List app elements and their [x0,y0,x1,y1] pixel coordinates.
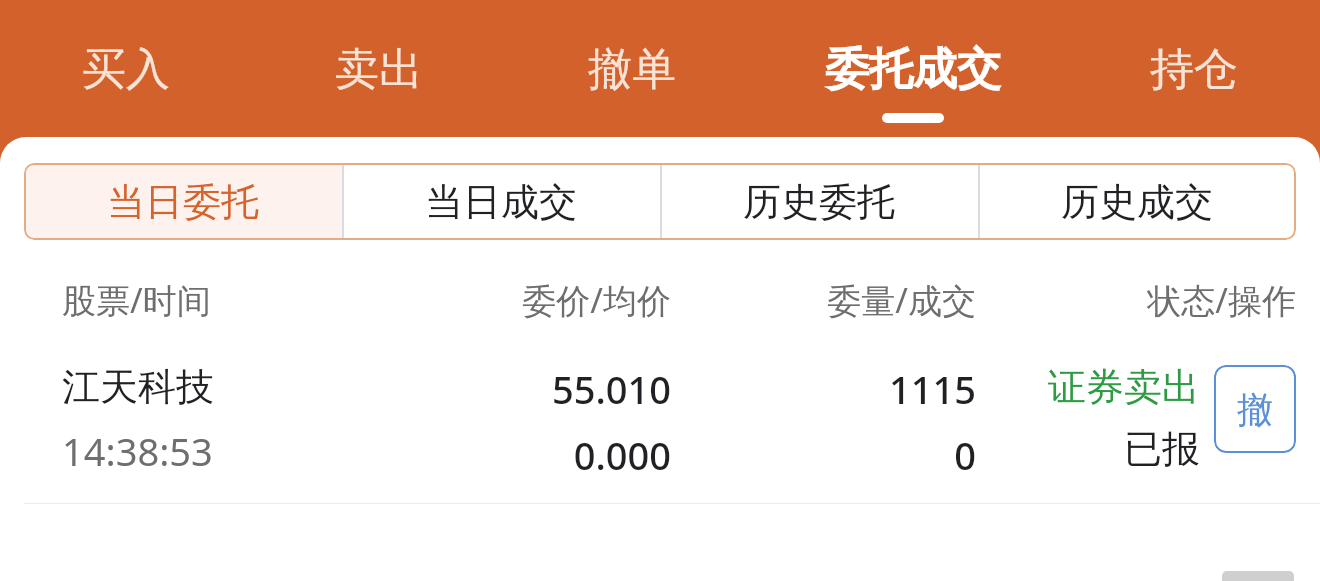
staticText: 委量/成交 [671,277,976,323]
staticText: 持仓 [1150,42,1238,97]
staticText: 卖出 [335,42,423,97]
staticText: 证券卖出 [1048,363,1200,411]
staticText: 撤单 [588,42,676,97]
staticText: 委价/均价 [366,277,671,323]
staticText: 0.000 [366,429,671,481]
staticText: 55.010 [366,363,671,415]
button[interactable]: 历史委托 [660,163,978,240]
button[interactable]: 撤单 [1214,365,1296,453]
button[interactable]: 卖出 [252,0,505,137]
staticText: 历史委托 [743,178,895,226]
staticText: 股票/时间 [62,277,366,323]
staticText: 14:38:53 [62,425,366,477]
staticText: 当日委托 [107,178,259,226]
button[interactable]: 持仓 [1067,0,1320,137]
staticText: 状态/操作 [976,277,1296,323]
staticText: 0 [671,429,976,481]
button[interactable]: 江天科技 [0,363,1320,481]
staticText: 历史成交 [1061,178,1213,226]
staticText: 江天科技 [62,363,366,411]
button[interactable]: 买入 [0,0,252,137]
staticText: 1115 [671,363,976,415]
staticText: 撤 [1237,387,1273,432]
button[interactable]: 撤单 [505,0,758,137]
staticText: 委托成交 [825,42,1001,97]
staticText: 买入 [82,42,170,97]
button[interactable]: 委托成交 [758,0,1067,137]
button[interactable]: 当日委托 [24,163,342,240]
staticText: 已报 [1124,425,1200,473]
staticText: 当日成交 [425,178,577,226]
button[interactable]: 当日成交 [342,163,660,240]
button[interactable]: 历史成交 [978,163,1296,240]
